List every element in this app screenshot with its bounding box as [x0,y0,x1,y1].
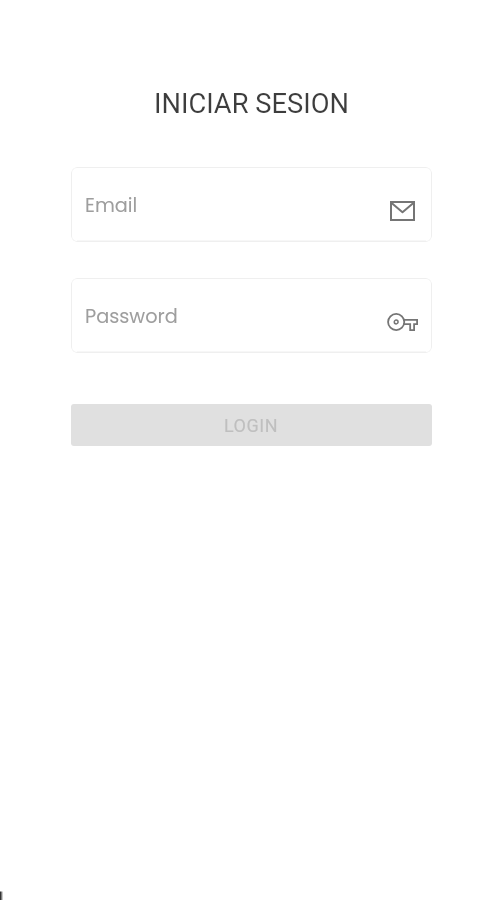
other: Email [390,201,415,221]
staticText: Password [85,303,178,330]
staticText: Email [85,192,138,219]
button[interactable]: Email [71,167,432,242]
button[interactable]: Password [71,278,432,353]
staticText: LOGIN [224,415,279,436]
button[interactable]: LOGIN [71,404,432,446]
staticText: INICIAR SESION [2,88,499,120]
other: Password [388,313,418,331]
